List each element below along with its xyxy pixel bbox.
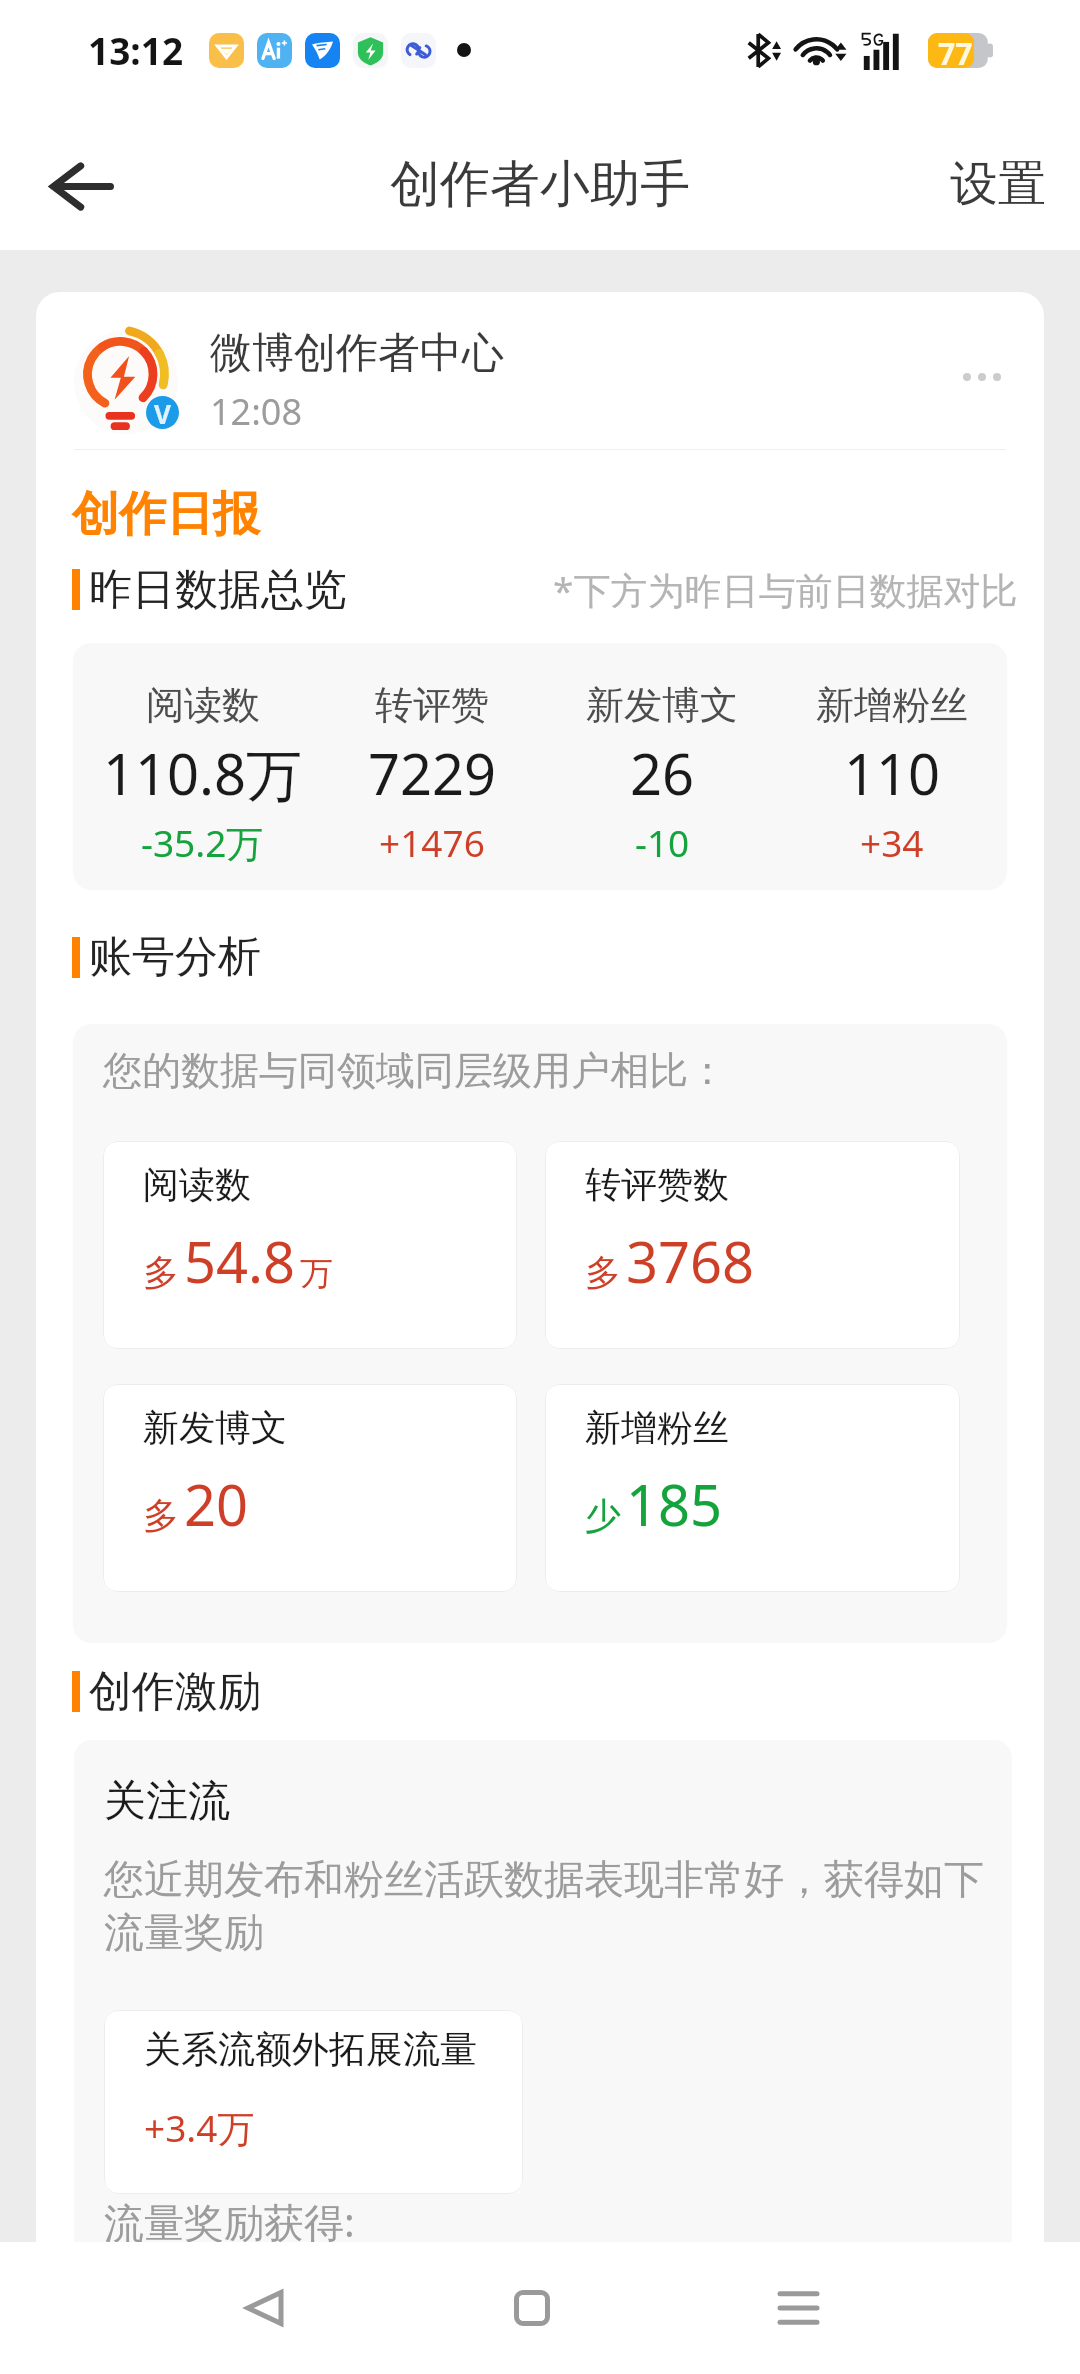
staticText: 77 bbox=[938, 33, 973, 68]
staticText: 您的数据与同领域同层级用户相比： bbox=[103, 1046, 727, 1095]
button[interactable]: 新发博文 bbox=[103, 1384, 517, 1592]
staticText: 账号分析 bbox=[89, 930, 261, 984]
staticText: 关注流 bbox=[104, 1775, 230, 1828]
button[interactable]: 新增粉丝 bbox=[545, 1384, 960, 1592]
staticText: 转评赞 bbox=[375, 681, 489, 729]
staticText: 您近期发布和粉丝活跃数据表现非常好，获得如下流量奖励 bbox=[104, 1854, 988, 1958]
staticText: +3.4万 bbox=[144, 2102, 255, 2153]
staticText: +34 bbox=[860, 817, 924, 867]
staticText: 110.8万 bbox=[103, 735, 303, 811]
staticText: -10 bbox=[635, 817, 690, 867]
staticText: 少 bbox=[585, 1493, 621, 1538]
staticText: 新发博文 bbox=[586, 681, 738, 729]
button[interactable]: Home bbox=[427, 2242, 637, 2374]
staticText: 昨日数据总览 bbox=[89, 563, 347, 617]
button[interactable]: 转评赞数 bbox=[545, 1141, 960, 1349]
staticText: 设置 bbox=[950, 154, 1046, 214]
staticText: 流量奖励获得: bbox=[104, 2194, 355, 2242]
staticText: 新发博文 bbox=[143, 1405, 287, 1450]
staticText: 转评赞数 bbox=[585, 1162, 729, 1207]
staticText: 185 bbox=[626, 1466, 723, 1542]
staticText: *下方为昨日与前日数据对比 bbox=[553, 564, 1018, 615]
button[interactable]: 设置 bbox=[910, 114, 1080, 254]
staticText: -35.2万 bbox=[141, 817, 264, 868]
staticText: 多 bbox=[143, 1493, 179, 1538]
staticText: 创作日报 bbox=[72, 485, 260, 544]
staticText: 微博创作者中心 bbox=[210, 327, 504, 380]
staticText: 新增粉丝 bbox=[816, 681, 968, 729]
staticText: 13:12 bbox=[88, 25, 184, 75]
button[interactable]: 阅读数 bbox=[103, 1141, 517, 1349]
staticText: 54.8 bbox=[184, 1223, 296, 1299]
staticText: 多 bbox=[585, 1250, 621, 1295]
staticText: 万 bbox=[300, 1253, 333, 1295]
staticText: 阅读数 bbox=[146, 681, 260, 729]
staticText: 7229 bbox=[368, 735, 497, 811]
staticText: 12:08 bbox=[210, 387, 303, 436]
staticText: +1476 bbox=[379, 817, 485, 867]
staticText: 新增粉丝 bbox=[585, 1405, 729, 1450]
button[interactable]: Back bbox=[0, 116, 150, 256]
staticText: 多 bbox=[143, 1250, 179, 1295]
button[interactable]: Recents bbox=[693, 2242, 903, 2374]
staticText: 20 bbox=[184, 1466, 249, 1542]
staticText: 26 bbox=[630, 735, 695, 811]
button[interactable]: Back bbox=[160, 2242, 370, 2374]
staticText: V bbox=[154, 396, 171, 429]
staticText: 110 bbox=[844, 735, 941, 811]
button[interactable]: 关系流额外拓展流量 bbox=[104, 2010, 523, 2194]
staticText: 阅读数 bbox=[143, 1162, 251, 1207]
staticText: 关系流额外拓展流量 bbox=[144, 2026, 477, 2073]
button[interactable]: More options bbox=[949, 359, 1015, 395]
staticText: 3768 bbox=[626, 1223, 755, 1299]
staticText: 创作者小助手 bbox=[390, 153, 690, 216]
staticText: 创作激励 bbox=[89, 1665, 261, 1719]
